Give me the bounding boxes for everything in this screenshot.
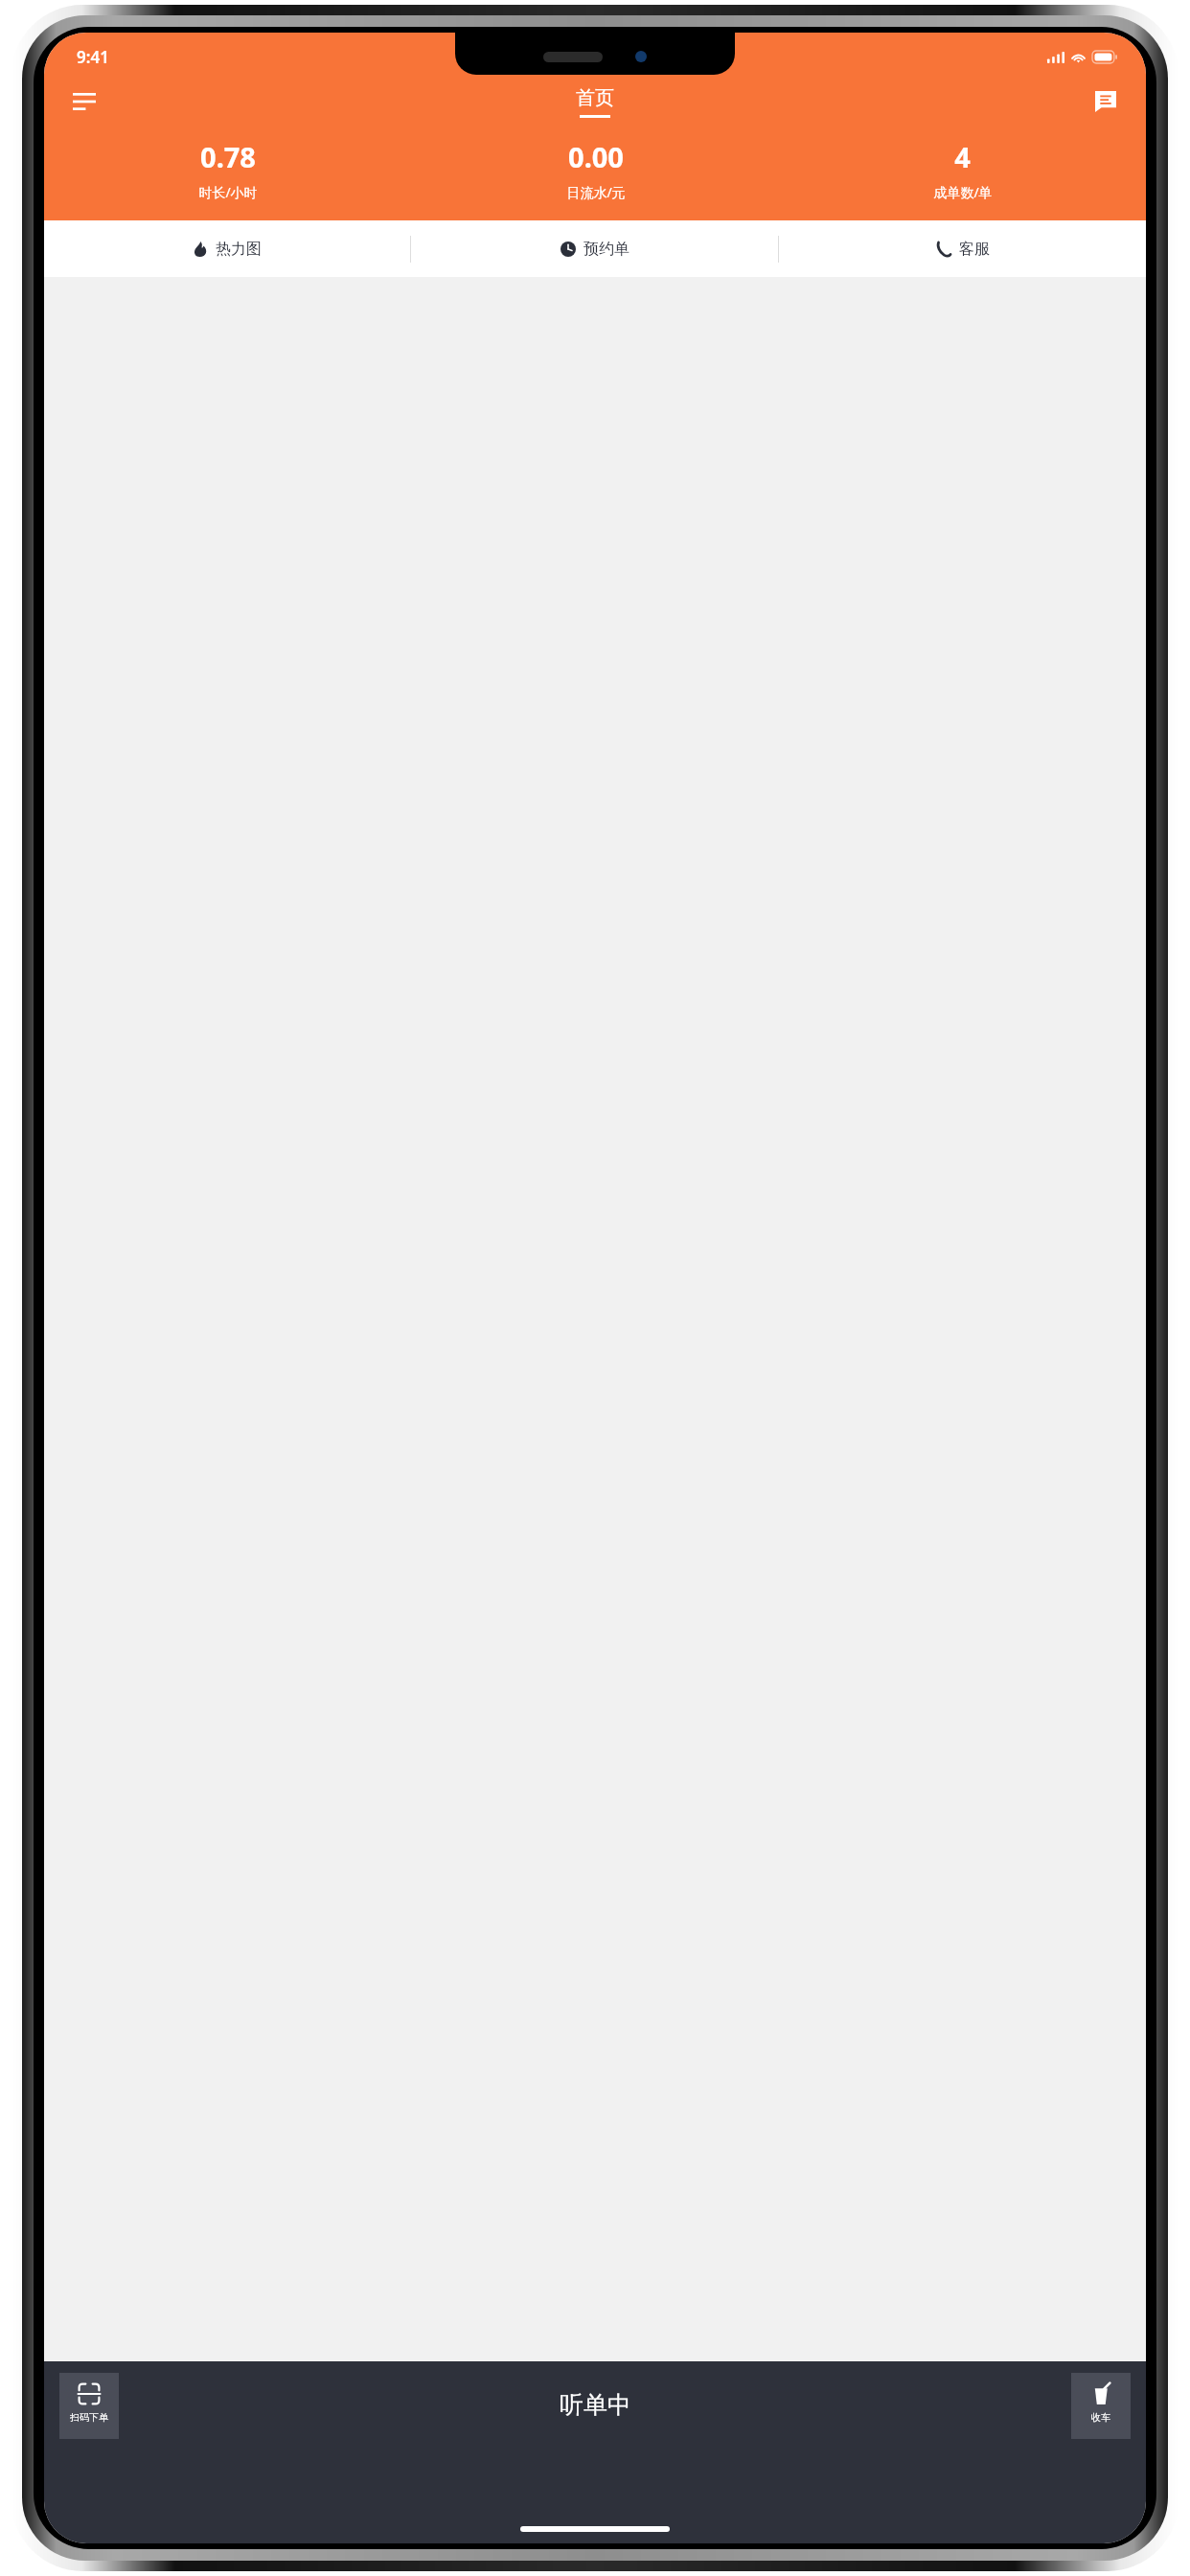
staticText: 0.78 — [200, 138, 256, 175]
button[interactable]: 热力图 — [44, 220, 410, 277]
staticText: 收车 — [1091, 2411, 1110, 2424]
button[interactable]: 0.00 — [412, 138, 779, 201]
staticText: 成单数/单 — [933, 183, 993, 201]
button[interactable]: Messages — [1081, 77, 1131, 126]
staticText: 时长/小时 — [198, 183, 258, 201]
button[interactable]: 4 — [779, 138, 1146, 201]
staticText: 客服 — [959, 240, 990, 259]
staticText: 热力图 — [216, 240, 262, 259]
button[interactable]: 首页 — [576, 86, 614, 118]
button[interactable]: 扫码下单 — [59, 2373, 119, 2439]
button[interactable]: 客服 — [779, 220, 1146, 277]
staticText: 0.00 — [568, 138, 624, 175]
button[interactable]: 听单中 — [560, 2390, 631, 2420]
button[interactable]: 0.78 — [44, 138, 412, 201]
staticText: 扫码下单 — [70, 2411, 108, 2424]
staticText: 9:41 — [77, 46, 109, 68]
button[interactable]: Menu — [57, 75, 111, 128]
staticText: 4 — [954, 138, 971, 175]
staticText: 预约单 — [584, 240, 629, 259]
staticText: 首页 — [576, 86, 614, 110]
button[interactable]: 收车 — [1071, 2373, 1131, 2439]
staticText: 日流水/元 — [566, 183, 626, 201]
button[interactable]: 预约单 — [411, 220, 778, 277]
